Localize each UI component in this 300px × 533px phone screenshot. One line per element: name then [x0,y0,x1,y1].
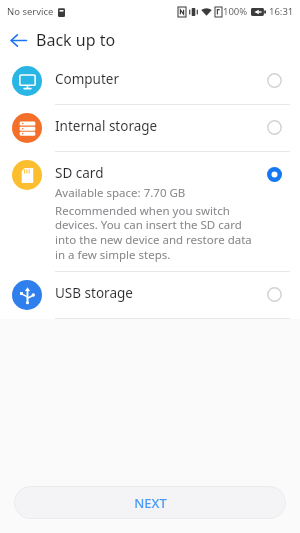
button[interactable]: NEXT [14,486,286,519]
staticText: NEXT [134,494,167,512]
staticText: USB storage [55,284,133,302]
button[interactable]: Internal storage [0,105,300,151]
button[interactable]: SD card [0,152,300,271]
button[interactable]: Select SD card [260,160,288,188]
button[interactable]: Computer [0,58,300,104]
button[interactable]: Back [0,22,36,58]
button[interactable]: Select Internal storage [260,113,288,141]
staticText: Computer [55,70,120,88]
staticText: SD card [55,164,104,182]
button[interactable]: Select Computer [260,66,288,94]
staticText: No service [7,5,54,18]
staticText: Recommended when you switch devices. You… [55,203,252,263]
staticText: Internal storage [55,117,158,135]
button[interactable]: USB storage [0,272,300,318]
button[interactable]: Select USB storage [260,280,288,308]
staticText: 100% [223,5,248,18]
staticText: Back up to [36,29,116,51]
staticText: Available space: 7.70 GB [55,185,186,201]
staticText: 16:31 [269,5,294,18]
